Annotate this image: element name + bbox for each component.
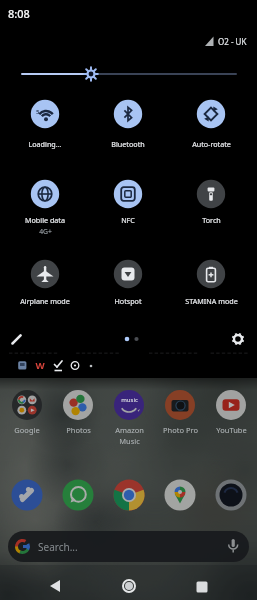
staticText: Search... (38, 540, 78, 554)
button[interactable] (173, 172, 249, 238)
staticText: Photos (66, 425, 91, 435)
button[interactable] (90, 252, 166, 312)
button[interactable] (56, 383, 100, 439)
staticText: Torch (202, 215, 221, 225)
button[interactable] (113, 570, 145, 600)
button[interactable] (111, 477, 147, 513)
button[interactable] (5, 383, 49, 439)
staticText: Loading... (28, 139, 62, 149)
staticText: 4G+ (39, 227, 52, 236)
staticText: 5 (36, 108, 40, 116)
button[interactable] (107, 383, 151, 439)
staticText: Bluetooth (111, 139, 145, 149)
staticText: Airplane mode (20, 296, 70, 306)
button[interactable] (226, 327, 250, 351)
staticText: Music (119, 436, 140, 446)
staticText: Hotspot (114, 296, 142, 306)
staticText: Mobile data (25, 215, 65, 225)
staticText: Photo Pro (163, 425, 198, 435)
button[interactable] (186, 570, 218, 600)
button[interactable] (9, 477, 45, 513)
staticText: Auto-rotate (192, 139, 231, 149)
button[interactable] (8, 531, 249, 563)
button[interactable] (158, 383, 202, 439)
staticText: music (121, 396, 138, 404)
button[interactable] (162, 477, 198, 513)
staticText: W (35, 359, 45, 372)
button[interactable] (209, 383, 253, 439)
staticText: NFC (121, 215, 135, 225)
button[interactable] (173, 252, 249, 312)
button[interactable] (173, 92, 249, 150)
staticText: STAMINA mode (185, 296, 238, 306)
button[interactable] (22, 62, 238, 86)
button[interactable] (7, 92, 83, 150)
button[interactable] (5, 327, 29, 351)
button[interactable] (213, 477, 249, 513)
staticText: Google (14, 425, 40, 435)
staticText: O2 - UK (218, 36, 247, 47)
button[interactable] (60, 477, 96, 513)
staticText: 8:08 (8, 6, 30, 21)
button[interactable] (90, 172, 166, 238)
button[interactable] (7, 252, 83, 312)
staticText: Amazon (115, 425, 144, 435)
button[interactable] (90, 92, 166, 150)
button[interactable] (39, 570, 71, 600)
staticText: YouTube (216, 425, 247, 435)
button[interactable] (7, 172, 83, 238)
